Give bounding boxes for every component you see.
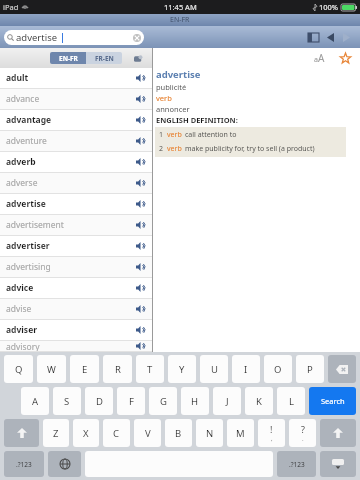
button[interactable]: Toggle sidebar (304, 29, 322, 45)
button[interactable]: advice (0, 278, 152, 299)
staticText: K (256, 395, 262, 408)
button[interactable]: L (277, 387, 305, 415)
staticText: 11:45 AM (164, 2, 197, 12)
button[interactable]: P (296, 355, 324, 383)
button[interactable]: Search (309, 387, 356, 415)
button[interactable]: H (181, 387, 209, 415)
staticText: C (113, 427, 120, 440)
staticText: A (318, 51, 325, 65)
button[interactable]: advertiser (0, 236, 152, 257)
staticText: adult (6, 72, 136, 84)
button[interactable]: ? (289, 419, 316, 447)
button[interactable]: advertisement (0, 215, 152, 236)
staticText: ENGLISH DEFINITION: (156, 115, 238, 125)
staticText: advisory (6, 341, 136, 351)
staticText: advertise (156, 68, 201, 81)
button[interactable]: O (264, 355, 292, 383)
button[interactable]: I (232, 355, 260, 383)
button[interactable]: Back (322, 29, 338, 45)
button[interactable]: T (136, 355, 164, 383)
button[interactable]: shift (320, 419, 356, 447)
staticText: advertiser (6, 240, 136, 252)
staticText: U (211, 363, 218, 376)
button[interactable]: FR-EN (86, 52, 122, 64)
staticText: advice (6, 282, 136, 294)
staticText: X (83, 427, 89, 440)
staticText: . (302, 435, 304, 443)
staticText: A (32, 395, 39, 408)
staticText: ! (270, 423, 273, 435)
button[interactable]: A (21, 387, 49, 415)
staticText: advise (6, 303, 136, 315)
button[interactable]: advise (0, 299, 152, 320)
button[interactable]: U (200, 355, 228, 383)
button[interactable]: D (85, 387, 113, 415)
staticText: publicité (156, 82, 187, 92)
staticText: I (244, 363, 248, 376)
button[interactable]: Text size (311, 51, 328, 65)
button[interactable]: Z (43, 419, 69, 447)
staticText: advertising (6, 261, 136, 273)
button[interactable]: advantage (0, 110, 152, 131)
button[interactable]: adverse (0, 173, 152, 194)
button[interactable]: ! (258, 419, 285, 447)
button[interactable]: adult (0, 68, 152, 89)
button[interactable]: C (103, 419, 130, 447)
button[interactable]: R (103, 355, 132, 383)
button[interactable]: S (53, 387, 81, 415)
button[interactable]: EN-FR (50, 52, 86, 64)
staticText: .?123 (289, 460, 305, 469)
staticText: E (82, 363, 88, 376)
staticText: V (145, 427, 151, 440)
button[interactable]: F (117, 387, 145, 415)
button[interactable]: advisory (0, 341, 152, 352)
staticText: advertise (16, 31, 58, 44)
button[interactable]: globe (48, 451, 81, 477)
button[interactable]: advertising (0, 257, 152, 278)
staticText: EN-FR (59, 54, 78, 63)
staticText: adventure (6, 135, 136, 147)
button[interactable]: E (70, 355, 99, 383)
staticText: advertise (6, 198, 136, 210)
button[interactable]: K (245, 387, 273, 415)
button[interactable]: del (328, 355, 356, 383)
button[interactable]: B (165, 419, 192, 447)
button[interactable]: .?123 (277, 451, 316, 477)
button[interactable]: hide (320, 451, 356, 477)
staticText: advance (6, 93, 136, 105)
button[interactable]: adventure (0, 131, 152, 152)
button[interactable]: adverb (0, 152, 152, 173)
staticText: P (307, 363, 313, 376)
staticText: Z (53, 427, 59, 440)
staticText: 2 (159, 144, 164, 154)
staticText: verb (167, 144, 182, 154)
button[interactable]: J (213, 387, 241, 415)
staticText: iPad (3, 2, 19, 12)
button[interactable]: Q (4, 355, 33, 383)
staticText: G (160, 395, 167, 408)
button[interactable]: G (149, 387, 177, 415)
button[interactable]: Forward (338, 29, 354, 45)
staticText: 100% (319, 2, 339, 12)
button[interactable]: .?123 (4, 451, 44, 477)
button[interactable]: advance (0, 89, 152, 110)
other: Clear search (133, 34, 141, 42)
button[interactable]: V (134, 419, 161, 447)
button[interactable]: W (37, 355, 66, 383)
staticText: N (206, 427, 214, 440)
button[interactable]: M (227, 419, 254, 447)
staticText: adverb (6, 156, 136, 168)
button[interactable]: advertise (4, 30, 144, 45)
staticText: adverse (6, 177, 136, 189)
button[interactable]: Favourite (338, 51, 352, 65)
button[interactable]: shift (4, 419, 39, 447)
staticText: B (175, 427, 182, 440)
button[interactable]: X (73, 419, 99, 447)
button[interactable]: N (196, 419, 223, 447)
button[interactable]: advertise (0, 194, 152, 215)
staticText: F (129, 395, 134, 408)
button[interactable]: History (132, 52, 144, 64)
button[interactable]: Y (168, 355, 196, 383)
button[interactable]: adviser (0, 320, 152, 341)
